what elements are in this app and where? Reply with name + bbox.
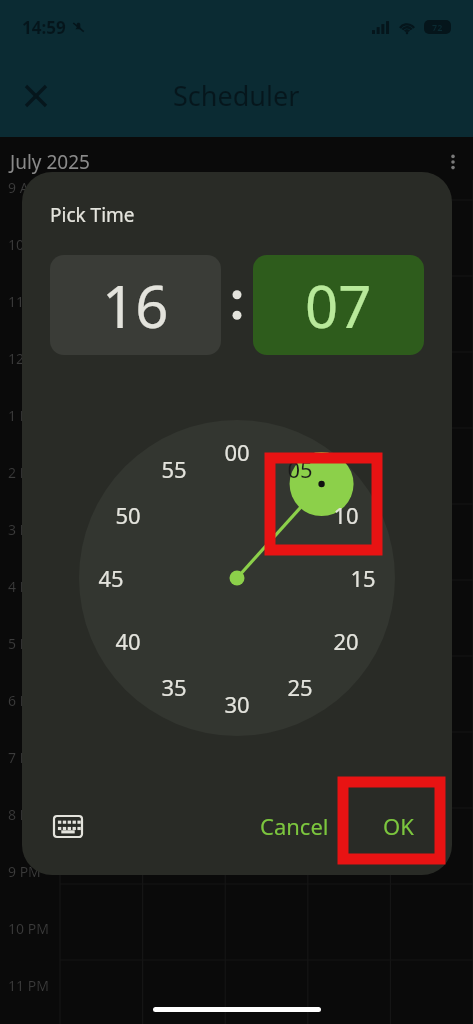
staticText: 14:59 bbox=[22, 16, 66, 39]
staticText: 3 PM bbox=[8, 520, 41, 539]
staticText: July 2025 bbox=[10, 149, 90, 175]
button[interactable]: 50 bbox=[106, 493, 150, 537]
staticText: 55 bbox=[161, 454, 187, 484]
button[interactable]: 10 bbox=[324, 493, 368, 537]
button[interactable]: 25 bbox=[278, 665, 322, 709]
button[interactable]: 07 bbox=[253, 255, 424, 355]
staticText: 11 PM bbox=[8, 976, 49, 995]
button[interactable]: 00 bbox=[215, 430, 259, 474]
staticText: 1 PM bbox=[8, 406, 41, 425]
staticText: 11 AM bbox=[8, 292, 50, 311]
staticText: 50 bbox=[115, 500, 141, 530]
button[interactable]: 16 bbox=[50, 255, 221, 355]
staticText: 9 AM bbox=[8, 178, 42, 197]
staticText: 40 bbox=[115, 626, 141, 656]
button[interactable]: Switch to text input bbox=[44, 802, 92, 850]
button[interactable]: 35 bbox=[152, 665, 196, 709]
staticText: 12 PM bbox=[8, 349, 49, 368]
staticText: 10 bbox=[333, 500, 359, 530]
staticText: 5 PM bbox=[8, 634, 41, 653]
staticText: 7 PM bbox=[8, 748, 41, 767]
button[interactable]: 15 bbox=[341, 556, 385, 600]
staticText: 8 PM bbox=[8, 805, 41, 824]
button[interactable]: 20 bbox=[324, 619, 368, 663]
staticText: 35 bbox=[161, 672, 187, 702]
button[interactable]: 40 bbox=[106, 619, 150, 663]
staticText: 45 bbox=[98, 563, 124, 593]
staticText: 07 bbox=[305, 266, 372, 345]
button[interactable]: Cancel bbox=[244, 801, 345, 851]
staticText: 72 bbox=[432, 21, 443, 33]
staticText: 05 bbox=[287, 454, 313, 484]
staticText: Scheduler bbox=[173, 77, 300, 114]
staticText: 2 PM bbox=[8, 463, 41, 482]
staticText: 16 bbox=[102, 266, 169, 345]
staticText: 9 PM bbox=[8, 862, 41, 881]
button[interactable]: Close bbox=[14, 74, 58, 118]
staticText: 4 PM bbox=[8, 577, 41, 596]
button[interactable]: 05 bbox=[278, 447, 322, 491]
button[interactable]: 30 bbox=[215, 682, 259, 726]
button[interactable]: OK bbox=[365, 801, 432, 851]
staticText: 10 PM bbox=[8, 919, 49, 938]
button[interactable]: 45 bbox=[89, 556, 133, 600]
staticText: 20 bbox=[333, 626, 359, 656]
staticText: OK bbox=[383, 811, 414, 841]
staticText: 25 bbox=[287, 672, 313, 702]
staticText: 10 AM bbox=[8, 235, 50, 254]
staticText: Cancel bbox=[260, 811, 329, 841]
staticText: 30 bbox=[224, 689, 250, 719]
staticText: 15 bbox=[350, 563, 376, 593]
button[interactable]: 55 bbox=[152, 447, 196, 491]
staticText: Pick Time bbox=[50, 202, 135, 228]
button[interactable]: More options bbox=[433, 142, 473, 182]
staticText: 6 PM bbox=[8, 691, 41, 710]
staticText: 00 bbox=[224, 437, 250, 467]
